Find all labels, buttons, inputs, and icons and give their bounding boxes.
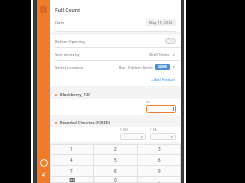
staticText: Before Opening [55,39,85,44]
staticText: 6 [158,157,161,163]
button[interactable]: Before Opening toggle [165,38,176,44]
button[interactable]: 9 [138,166,181,176]
button[interactable]: 4 [50,155,93,165]
staticText: + Add Product [151,77,175,82]
staticText: May 15, 2024 [149,20,173,25]
staticText: 4 [70,157,73,163]
button[interactable]: 6 [138,155,181,165]
button[interactable] [146,105,176,113]
button[interactable]: Select Location [50,61,181,73]
staticText: 24/30 [158,65,167,69]
staticText: 1 [70,146,73,152]
staticText: Select Location [55,65,84,70]
button[interactable]: + Add Product [150,76,176,83]
staticText: Bar - Kitchen Items [119,65,153,70]
button[interactable] [120,133,146,140]
button[interactable]: Before Opening [50,35,181,48]
button[interactable]: Blackberry, 12f [55,92,176,97]
staticText: 3 [158,146,161,152]
button[interactable]: Branded Cherries (FIXED) [55,120,176,125]
staticText: 5 LBS [120,128,129,132]
button[interactable]: Account [40,159,48,167]
staticText: Sort items by [55,52,80,57]
button[interactable]: 0 [94,177,137,183]
staticText: Date [55,20,65,26]
staticText: . [159,177,161,183]
staticText: Blackberry, 12f [60,92,90,97]
button[interactable]: 5 [94,155,137,165]
button[interactable]: 7 [50,166,93,176]
button[interactable]: Sort items by [50,48,181,61]
staticText: 1 EA [150,128,157,132]
staticText: 9 [158,168,161,174]
staticText: 5 [114,157,117,163]
button[interactable]: del [50,177,93,183]
button[interactable]: . [138,177,181,183]
button[interactable]: 8 [94,166,137,176]
button[interactable]: May 15, 2024 [146,19,176,26]
staticText: Shelf Order [149,52,170,57]
staticText: 7 [70,168,73,174]
staticText: 8 [114,168,117,174]
staticText: Branded Cherries (FIXED) [60,120,110,125]
button[interactable]: Collapse [40,171,47,178]
staticText: 0 [114,177,117,183]
staticText: oz [146,100,150,104]
button[interactable]: 3 [138,144,181,154]
button[interactable]: 2 [94,144,137,154]
staticText: 2 [114,146,117,152]
staticText: Full Count [55,7,81,14]
button[interactable]: 1 [50,144,93,154]
button[interactable] [150,133,176,140]
